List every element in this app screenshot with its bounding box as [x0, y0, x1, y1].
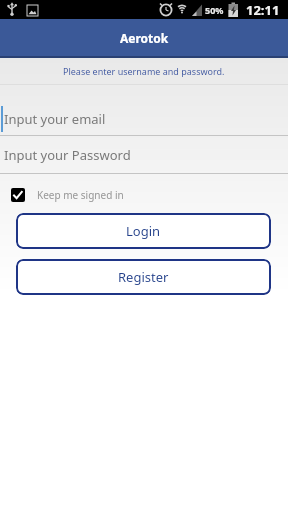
button[interactable]: Register — [16, 259, 271, 295]
button[interactable]: Input your email — [0, 102, 288, 135]
staticText: 12:11 — [246, 1, 280, 19]
staticText: Register — [118, 268, 169, 286]
button[interactable]: Login — [16, 213, 271, 249]
staticText: Input your email — [4, 110, 106, 128]
staticText: Aerotok — [120, 30, 169, 46]
staticText: Please enter username and password. — [63, 65, 225, 77]
button[interactable]: Keep me signed in — [11, 187, 124, 202]
button[interactable]: Input your Password — [0, 137, 288, 173]
staticText: Login — [126, 222, 161, 240]
staticText: 50% — [205, 4, 224, 16]
staticText: Input your Password — [4, 146, 131, 164]
staticText: Keep me signed in — [37, 188, 124, 202]
